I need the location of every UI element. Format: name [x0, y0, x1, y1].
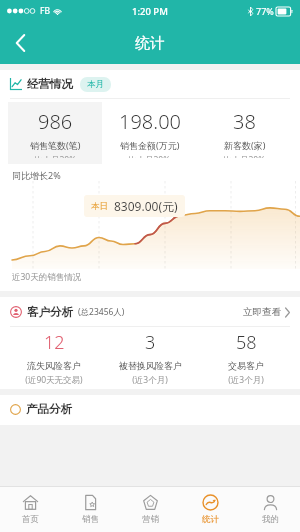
button[interactable]: 198.00: [102, 102, 197, 164]
staticText: (近90天无交易): [25, 374, 83, 386]
staticText: FB: [40, 5, 50, 17]
staticText: 12: [44, 330, 65, 355]
button[interactable]: Back: [0, 23, 40, 63]
staticText: 立即查看: [243, 306, 281, 318]
staticText: 近30天的销售情况: [12, 271, 82, 283]
staticText: 销售金额(万元): [120, 139, 180, 151]
staticText: 客户分析: [27, 305, 73, 319]
staticText: 销售: [82, 514, 99, 525]
staticText: 交易客户: [228, 360, 264, 371]
staticText: 统计: [202, 514, 219, 525]
staticText: 被替换风险客户: [119, 360, 182, 371]
button[interactable]: 58: [198, 327, 294, 389]
staticText: 38: [233, 108, 256, 135]
staticText: 比上月20%: [34, 154, 77, 158]
staticText: 营销: [142, 514, 159, 525]
button[interactable]: 本月: [80, 77, 111, 92]
staticText: 1:20 PM: [132, 5, 168, 18]
staticText: 比上月20%: [128, 154, 171, 158]
button[interactable]: 986: [8, 102, 102, 164]
staticText: (近3个月): [132, 374, 168, 386]
staticText: 流失风险客户: [27, 360, 81, 371]
button[interactable]: 销售: [60, 487, 120, 532]
staticText: 同比增长2%: [12, 169, 61, 181]
staticText: 58: [236, 330, 257, 355]
staticText: 本日: [91, 201, 108, 212]
button[interactable]: 38: [197, 102, 292, 164]
button[interactable]: 我的: [240, 487, 300, 532]
button[interactable]: 客户分析: [0, 297, 300, 326]
staticText: 经营情况: [27, 77, 73, 91]
staticText: 198.00: [119, 108, 181, 135]
button[interactable]: 3: [102, 327, 198, 389]
staticText: (近3个月): [228, 374, 264, 386]
staticText: (总23456人): [78, 306, 125, 318]
button[interactable]: 经营情况: [0, 70, 300, 98]
staticText: 首页: [22, 514, 39, 525]
staticText: 我的: [262, 514, 279, 525]
staticText: 本月: [87, 79, 104, 90]
staticText: 新客数(家): [224, 139, 266, 151]
button[interactable]: 12: [6, 327, 102, 389]
staticText: 3: [145, 330, 156, 355]
button[interactable]: 产品分析: [0, 395, 300, 423]
staticText: 77%: [256, 5, 274, 17]
button[interactable]: 首页: [0, 487, 60, 532]
staticText: 986: [38, 108, 73, 135]
staticText: 产品分析: [26, 402, 72, 416]
staticText: 8309.00(元): [114, 198, 178, 214]
button[interactable]: 营销: [120, 487, 180, 532]
staticText: 销售笔数(笔): [30, 139, 81, 151]
staticText: 比上月20%: [223, 154, 266, 158]
staticText: 统计: [135, 34, 165, 53]
button[interactable]: 统计: [180, 487, 240, 532]
